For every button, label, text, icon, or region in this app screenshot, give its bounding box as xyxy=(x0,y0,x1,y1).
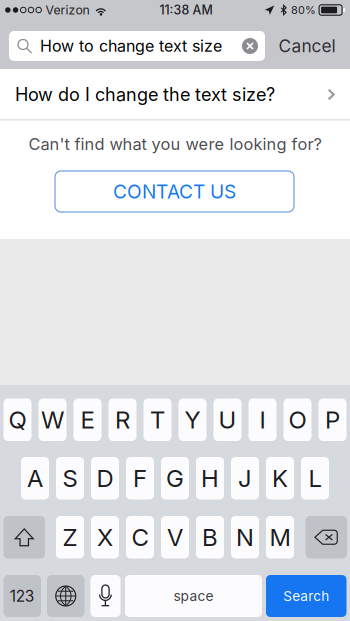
staticText: S xyxy=(62,464,77,493)
staticText: Can't find what you were looking for? xyxy=(28,134,321,154)
staticText: J xyxy=(238,464,252,493)
staticText: K xyxy=(272,464,288,493)
button[interactable]: Y xyxy=(178,398,206,441)
button[interactable]: W xyxy=(38,398,66,441)
button[interactable]: B xyxy=(196,516,224,558)
staticText: B xyxy=(202,523,218,552)
button[interactable]: K xyxy=(266,457,294,499)
staticText: V xyxy=(167,523,183,552)
staticText: O xyxy=(288,405,306,434)
button[interactable]: N xyxy=(231,516,259,558)
button[interactable]: Delete xyxy=(305,516,347,558)
staticText: Verizon xyxy=(45,3,89,17)
staticText: Cancel xyxy=(278,35,335,56)
staticText: T xyxy=(150,405,165,434)
staticText: F xyxy=(133,464,147,493)
button[interactable]: H xyxy=(196,457,224,499)
button[interactable]: I xyxy=(248,398,276,441)
staticText: P xyxy=(325,405,340,434)
staticText: G xyxy=(166,464,184,493)
button[interactable]: Next keyboard xyxy=(47,575,84,617)
staticText: R xyxy=(115,405,130,434)
button[interactable]: U xyxy=(213,398,241,441)
staticText: C xyxy=(131,523,148,552)
staticText: N xyxy=(236,523,254,552)
button[interactable]: V xyxy=(161,516,189,558)
button[interactable]: L xyxy=(301,457,329,499)
button[interactable]: M xyxy=(266,516,294,558)
button[interactable]: How do I change the text size? xyxy=(0,69,350,120)
button[interactable]: E xyxy=(73,398,101,441)
button[interactable]: O xyxy=(283,398,311,441)
button[interactable]: Z xyxy=(56,516,84,558)
staticText: M xyxy=(269,523,290,552)
staticText: Q xyxy=(8,405,26,434)
staticText: H xyxy=(201,464,219,493)
button[interactable]: S xyxy=(56,457,84,499)
button[interactable]: A xyxy=(21,457,49,499)
staticText: A xyxy=(27,464,43,493)
staticText: Search xyxy=(283,588,329,604)
button[interactable]: Cancel xyxy=(269,31,345,61)
staticText: X xyxy=(97,523,113,552)
staticText: 80% xyxy=(291,3,316,17)
button[interactable]: C xyxy=(126,516,154,558)
button[interactable]: Shift xyxy=(3,516,45,558)
staticText: E xyxy=(80,405,94,434)
staticText: space xyxy=(173,588,213,604)
button[interactable]: J xyxy=(231,457,259,499)
staticText: W xyxy=(41,405,64,434)
button[interactable]: T xyxy=(143,398,171,441)
staticText: How to change text size xyxy=(40,36,222,56)
staticText: Z xyxy=(62,523,77,552)
button[interactable]: space xyxy=(125,575,262,617)
staticText: CONTACT US xyxy=(113,180,236,203)
button[interactable]: Q xyxy=(3,398,31,441)
staticText: How do I change the text size? xyxy=(15,84,275,105)
button[interactable]: Dictation xyxy=(90,575,120,617)
staticText: L xyxy=(308,464,321,493)
staticText: D xyxy=(96,464,113,493)
button[interactable]: CONTACT US xyxy=(55,171,294,212)
button[interactable]: X xyxy=(91,516,119,558)
staticText: U xyxy=(218,405,236,434)
staticText: I xyxy=(259,405,265,434)
staticText: 11:38 AM xyxy=(159,2,212,17)
staticText: 123 xyxy=(10,587,35,605)
button[interactable]: F xyxy=(126,457,154,499)
button[interactable]: P xyxy=(318,398,346,441)
button[interactable]: R xyxy=(108,398,136,441)
button[interactable]: D xyxy=(91,457,119,499)
button[interactable]: 123 xyxy=(3,575,41,617)
button[interactable]: G xyxy=(161,457,189,499)
staticText: Y xyxy=(184,405,200,434)
button[interactable]: Search xyxy=(266,575,346,617)
